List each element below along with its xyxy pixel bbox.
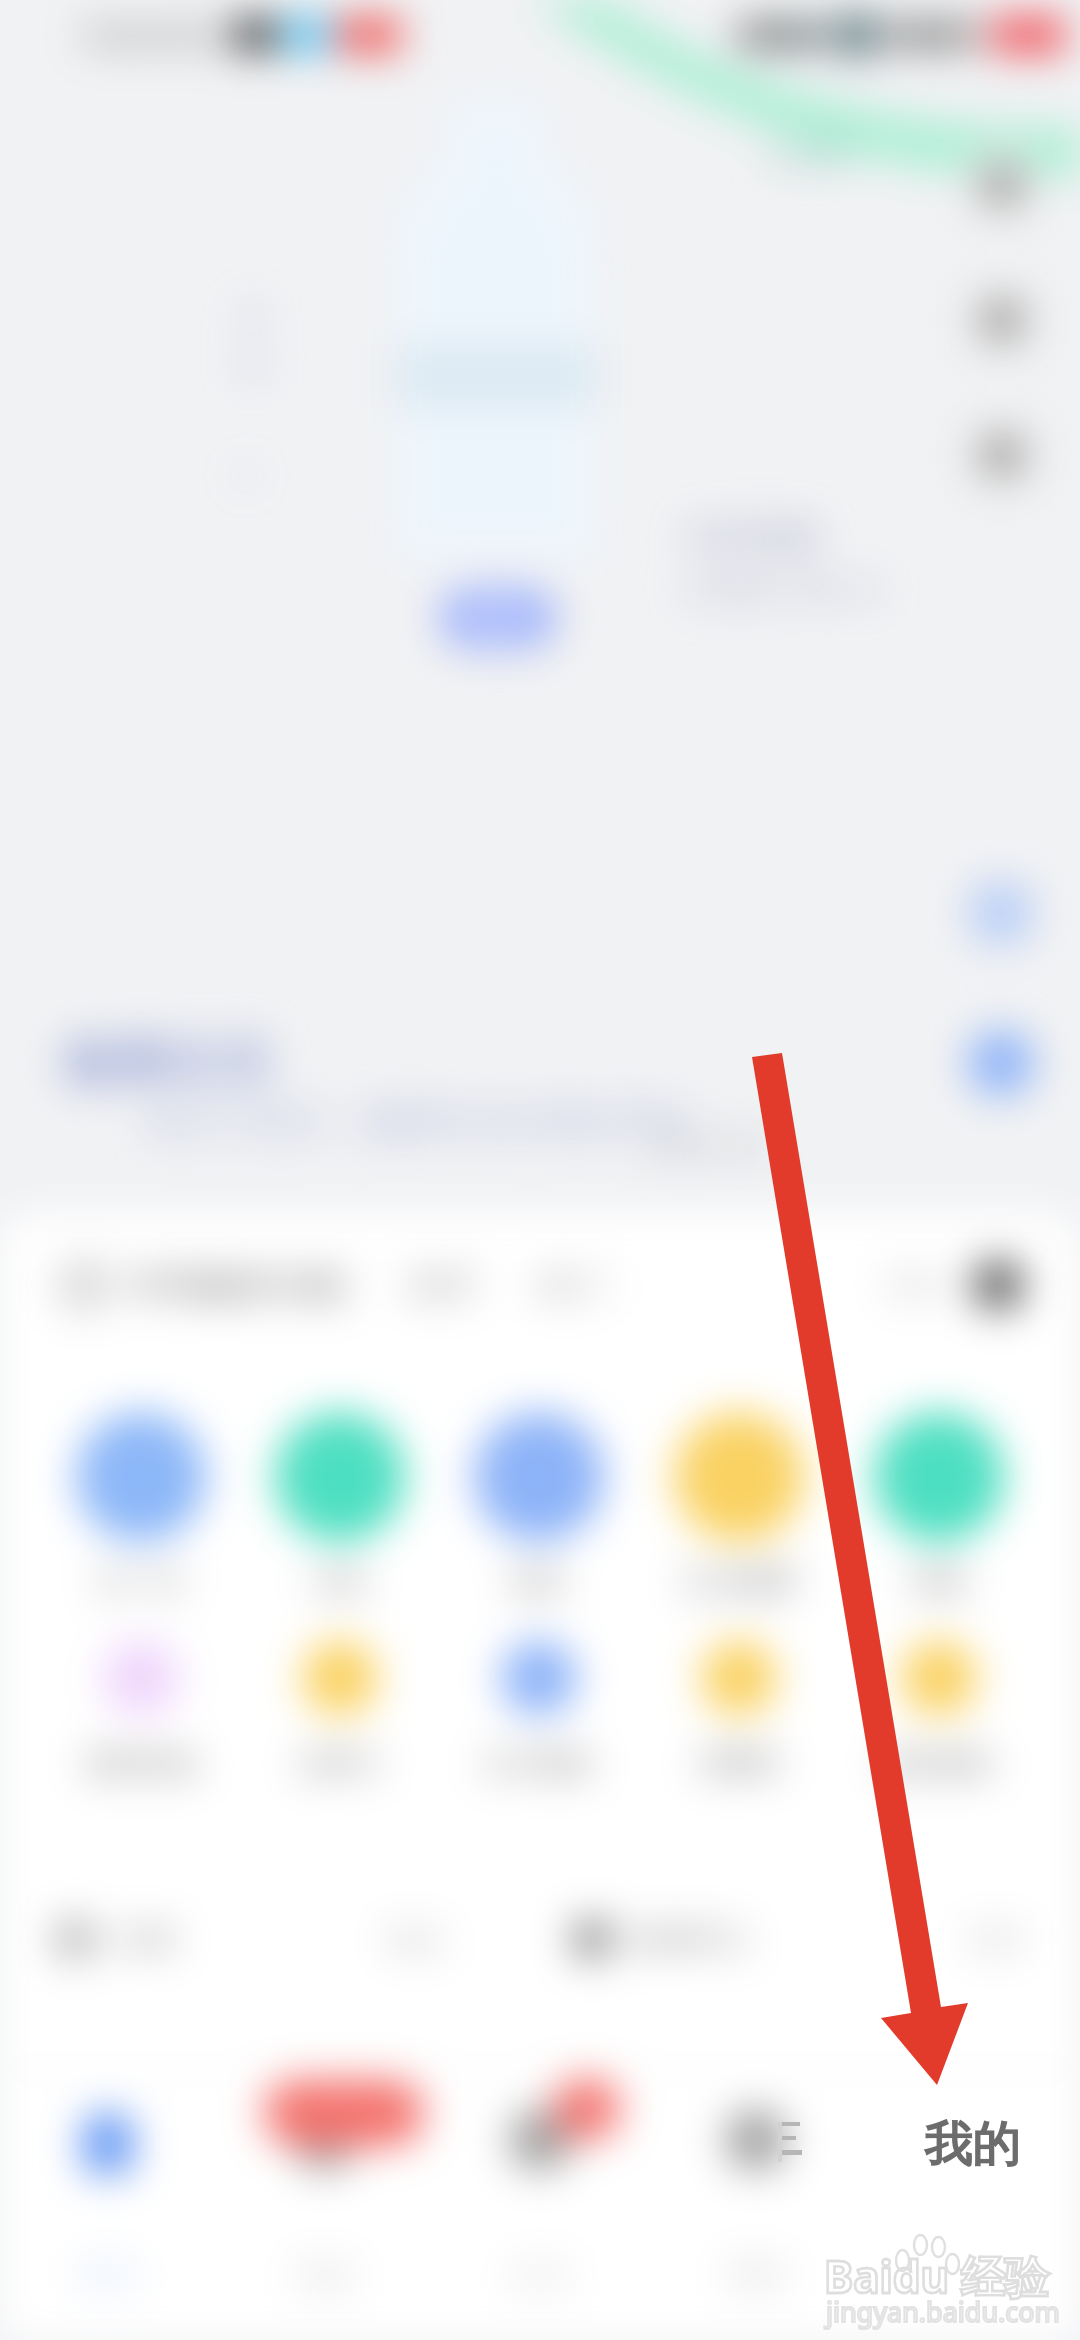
button[interactable]: 扫一扫 [41,1412,240,1599]
button[interactable]: 首页 [0,2068,216,2340]
staticText: 出行服务 [483,1746,595,1781]
staticText: 查看详情 [648,1128,768,1166]
button[interactable]: 我的 [864,2070,1080,2220]
button[interactable] [864,2068,1080,2340]
button[interactable]: 出行服务 [439,1640,639,1781]
button[interactable]: 生活缴费 [639,1412,839,1599]
staticText: 付款 [312,1564,368,1599]
button[interactable]: 喝水 [440,588,556,648]
button[interactable]: 消息 [216,2068,432,2340]
staticText: 生活缴费 [683,1564,795,1599]
staticText: 活动中心 [629,1920,749,1958]
button[interactable]: 消费券 [639,1640,839,1781]
staticText: 我的 [924,2115,1020,2175]
staticText: 今日 [772,18,828,53]
button[interactable]: 收款 [439,1412,639,1599]
staticText: 收款 [511,1564,567,1599]
staticText: 常用服务功能 [130,1263,346,1308]
staticText: 10:34 周三 [80,15,225,56]
staticText: 消费券 [697,1746,781,1781]
button[interactable]: 我的快递 [41,1640,240,1781]
button[interactable]: Feedback [968,1030,1034,1096]
button[interactable]: Share [968,880,1034,946]
button[interactable]: Tool [964,147,1040,223]
staticText: 理财 [911,1564,967,1599]
staticText: jingyan.baidu.com [826,2293,1060,2330]
staticText: 我的快递 [85,1746,197,1781]
staticText: Baidu 经验 [824,2246,1049,2306]
staticText: 更多服务 [883,1746,995,1781]
button[interactable]: 付款 [240,1412,439,1599]
button[interactable]: Tool [964,282,1040,358]
button[interactable]: 生活 [432,2068,648,2340]
button[interactable]: 更多服务 [839,1640,1039,1781]
button[interactable]: 信用卡 [240,1640,439,1781]
staticText: 信用卡 [298,1746,382,1781]
button[interactable]: Tool [964,417,1040,493]
button[interactable]: 理财 [839,1412,1039,1599]
button[interactable]: 理财 [648,2068,864,2340]
staticText: 已达标 [766,136,850,171]
staticText: 健康生活 [62,1030,270,1096]
